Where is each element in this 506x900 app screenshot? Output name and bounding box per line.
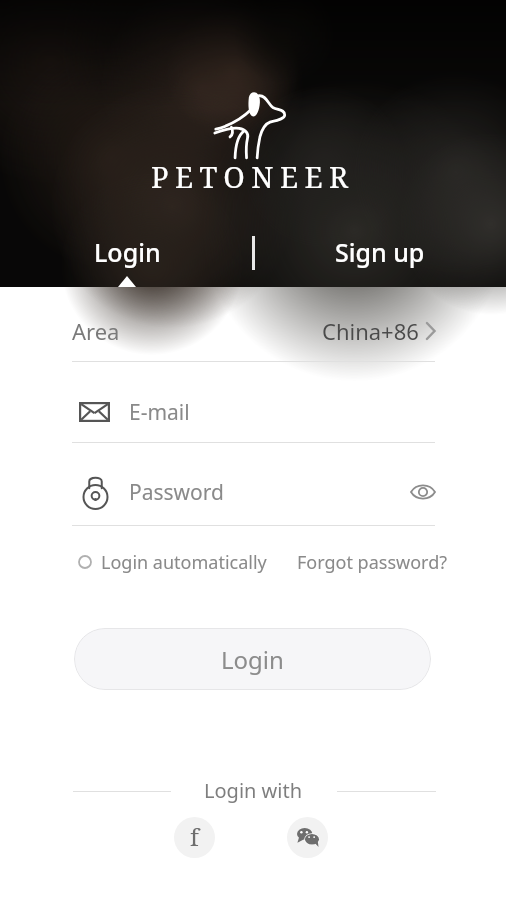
button[interactable]: Login: [74, 628, 431, 690]
staticText: Login with: [204, 777, 303, 804]
button[interactable]: Sign up: [310, 228, 450, 276]
staticText: f: [190, 820, 199, 853]
staticText: Forgot password?: [297, 550, 448, 575]
button[interactable]: Forgot password?: [297, 548, 448, 576]
staticText: Login: [221, 643, 284, 676]
staticText: Password: [129, 478, 224, 507]
button[interactable]: Area: [72, 305, 435, 357]
button[interactable]: Show password: [405, 474, 441, 510]
button[interactable]: Login automatically: [78, 548, 267, 576]
staticText: PETONEER: [151, 157, 355, 196]
staticText: Login: [94, 235, 161, 269]
button[interactable]: Login with WeChat: [287, 817, 328, 858]
staticText: Sign up: [335, 235, 425, 269]
staticText: E-mail: [129, 398, 190, 427]
button[interactable]: Login with Facebook: [174, 817, 215, 858]
staticText: Login automatically: [101, 550, 267, 575]
staticText: Area: [72, 316, 120, 346]
staticText: China+86: [322, 316, 419, 346]
button[interactable]: Login: [57, 228, 197, 276]
